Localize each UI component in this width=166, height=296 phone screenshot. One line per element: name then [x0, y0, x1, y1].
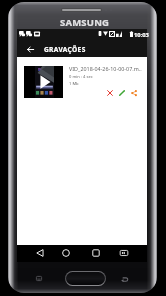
- button[interactable]: Delete: [105, 88, 114, 97]
- staticText: 0 min : 4 sec: [69, 74, 93, 80]
- button[interactable]: Back: [23, 42, 37, 56]
- button[interactable]: Home: [66, 272, 105, 285]
- button[interactable]: Switch keyboard: [118, 247, 130, 259]
- staticText: 10:03: [134, 31, 149, 39]
- staticText: 1 Mb: [69, 81, 79, 87]
- staticText: SAMSUNG: [60, 16, 110, 29]
- button[interactable]: VID_2018-04-26-10-00-07.m..: [19, 60, 144, 102]
- button[interactable]: Back: [34, 247, 46, 259]
- staticText: GRAVAÇÕES: [44, 45, 86, 54]
- button[interactable]: Recent apps: [33, 272, 45, 284]
- button[interactable]: Recents: [90, 247, 102, 259]
- button[interactable]: Share: [129, 88, 138, 97]
- button[interactable]: Home: [60, 247, 72, 259]
- button[interactable]: Edit: [117, 88, 126, 97]
- staticText: VID_2018-04-26-10-00-07.m..: [69, 65, 144, 72]
- button[interactable]: Back: [118, 273, 130, 285]
